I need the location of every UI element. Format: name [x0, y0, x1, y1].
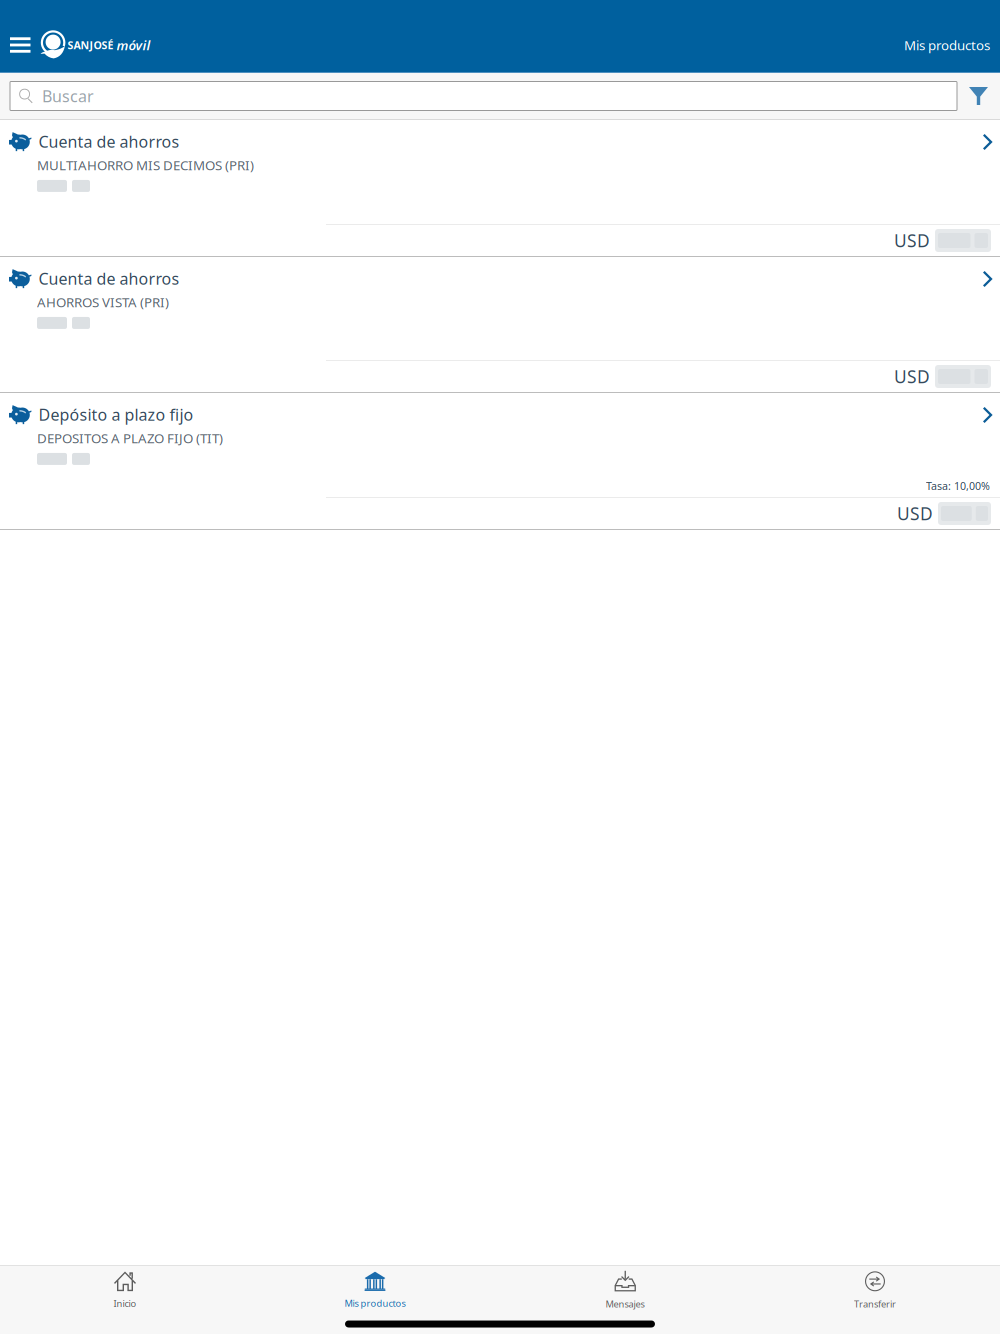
button[interactable]: Cuenta de ahorros — [0, 257, 1000, 393]
staticText: Depósito a plazo fijo — [38, 404, 193, 425]
button[interactable]: Filtrar — [957, 73, 1000, 118]
button[interactable]: Inicio — [0, 1259, 250, 1313]
button[interactable]: Menú — [0, 18, 40, 72]
staticText: Cuenta de ahorros — [38, 131, 179, 152]
staticText: Mis productos — [904, 36, 990, 54]
staticText: USD — [897, 502, 933, 525]
staticText: Mensajes — [605, 1298, 644, 1310]
staticText: Transferir — [854, 1298, 896, 1310]
button[interactable]: Cuenta de ahorros — [0, 120, 1000, 257]
staticText: USD — [894, 229, 930, 252]
staticText: MULTIAHORRO MIS DECIMOS (PRI) — [37, 156, 254, 174]
staticText: SANJOSÉ — [67, 38, 113, 52]
button[interactable]: Depósito a plazo fijo — [0, 393, 1000, 530]
staticText: Cuenta de ahorros — [38, 268, 179, 289]
button[interactable]: Mis productos — [904, 18, 1000, 72]
button[interactable]: Transferir — [750, 1259, 1000, 1313]
staticText: móvil — [116, 36, 150, 54]
staticText: DEPOSITOS A PLAZO FIJO (TIT) — [37, 429, 223, 447]
staticText: Mis productos — [344, 1297, 405, 1309]
staticText: AHORROS VISTA (PRI) — [37, 293, 169, 311]
button[interactable]: Mis productos — [250, 1260, 500, 1312]
staticText: Buscar — [42, 85, 94, 107]
staticText: Inicio — [113, 1297, 136, 1310]
button[interactable]: Mensajes — [500, 1259, 750, 1313]
staticText: USD — [894, 365, 930, 388]
staticText: Tasa: 10,00% — [926, 479, 990, 493]
